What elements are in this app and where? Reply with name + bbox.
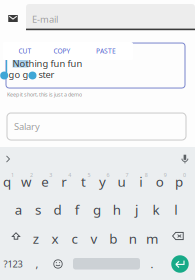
button[interactable]: z — [27, 224, 44, 248]
staticText: CUT — [18, 47, 31, 55]
button[interactable]: ?123 — [0, 252, 26, 276]
staticText: w — [21, 173, 31, 190]
button[interactable]: e — [37, 167, 54, 191]
button[interactable]: n — [124, 224, 141, 248]
staticText: ?123 — [3, 258, 22, 270]
button[interactable]: r — [56, 167, 73, 191]
button[interactable]: m — [144, 224, 161, 248]
staticText: COPY — [53, 47, 70, 55]
button[interactable]: p — [170, 167, 187, 191]
button[interactable]: b — [105, 224, 122, 248]
staticText: m — [146, 230, 158, 247]
staticText: PASTE — [96, 47, 116, 55]
staticText: a — [15, 201, 22, 218]
staticText: , — [35, 257, 38, 271]
staticText: h — [113, 201, 121, 218]
button[interactable]: g — [88, 195, 105, 219]
button[interactable]: Backspace — [169, 224, 186, 248]
button[interactable]: Expand suggestions — [1, 150, 15, 168]
staticText: 5 — [87, 171, 90, 179]
button[interactable]: a — [10, 195, 27, 219]
staticText: l — [174, 201, 177, 218]
staticText: n — [129, 230, 137, 247]
button[interactable]: i — [132, 167, 149, 191]
staticText: e — [41, 173, 49, 190]
button[interactable]: w — [18, 167, 35, 191]
staticText: 9 — [164, 171, 167, 179]
staticText: 7 — [126, 171, 129, 179]
staticText: . — [150, 257, 153, 271]
staticText: x — [52, 230, 59, 247]
button[interactable]: s — [29, 195, 46, 219]
button[interactable]: x — [47, 224, 64, 248]
staticText: z — [33, 230, 39, 247]
staticText: c — [71, 230, 77, 247]
button[interactable]: k — [148, 195, 165, 219]
staticText: o — [156, 173, 164, 190]
staticText: Salary — [14, 120, 40, 133]
button[interactable]: COPY — [48, 42, 76, 60]
staticText: f — [75, 201, 80, 218]
button[interactable]: Voice input — [178, 150, 192, 168]
button[interactable]: . — [145, 252, 159, 276]
staticText: 4 — [68, 171, 71, 179]
staticText: 1 — [11, 171, 14, 179]
button[interactable]: t — [75, 167, 92, 191]
button[interactable]: j — [128, 195, 145, 219]
staticText: E-mail — [32, 13, 58, 25]
button[interactable]: u — [113, 167, 130, 191]
button[interactable]: v — [85, 224, 102, 248]
staticText: 6 — [106, 171, 109, 179]
staticText: Keep it short, this is just a demo — [7, 91, 82, 98]
button[interactable]: , — [30, 252, 44, 276]
staticText: t — [81, 173, 86, 190]
staticText: 2 — [30, 171, 33, 179]
button[interactable]: l — [167, 195, 184, 219]
staticText: go go ster — [8, 68, 54, 81]
staticText: Nothing fun fun — [12, 57, 82, 70]
button[interactable]: PASTE — [91, 42, 121, 60]
staticText: q — [3, 173, 11, 190]
button[interactable]: q — [0, 167, 15, 191]
staticText: s — [35, 201, 41, 218]
staticText: 8 — [145, 171, 148, 179]
staticText: b — [109, 230, 117, 247]
staticText: g — [93, 201, 101, 218]
button[interactable]: CUT — [13, 42, 37, 60]
button[interactable]: f — [69, 195, 86, 219]
staticText: j — [135, 201, 138, 218]
button[interactable]: d — [49, 195, 66, 219]
staticText: d — [54, 201, 62, 218]
staticText: i — [139, 173, 142, 190]
staticText: y — [99, 173, 106, 190]
button[interactable]: Shift — [7, 224, 24, 248]
staticText: v — [90, 230, 97, 247]
button[interactable]: Enter — [169, 252, 191, 276]
staticText: p — [175, 173, 183, 190]
staticText: k — [153, 201, 160, 218]
staticText: 0 — [183, 171, 186, 179]
button[interactable]: Space — [73, 258, 140, 269]
staticText: r — [61, 173, 67, 190]
button[interactable]: y — [94, 167, 111, 191]
button[interactable]: Emoji — [50, 252, 66, 276]
staticText: 3 — [49, 171, 52, 179]
button[interactable]: o — [151, 167, 168, 191]
button[interactable]: h — [108, 195, 125, 219]
staticText: u — [118, 173, 126, 190]
button[interactable]: c — [66, 224, 83, 248]
